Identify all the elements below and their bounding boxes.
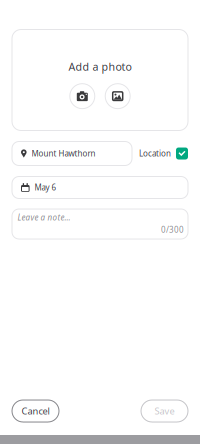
button[interactable]: Choose from library	[105, 84, 130, 109]
staticText: Add a photo	[68, 59, 131, 74]
staticText: 0/300	[161, 224, 184, 235]
button[interactable]: Save	[141, 400, 188, 422]
button[interactable]: Mount Hawthorn	[12, 141, 132, 165]
button[interactable]: Cancel	[12, 400, 59, 422]
staticText: Mount Hawthorn	[32, 148, 96, 159]
button[interactable]: May 6	[12, 176, 188, 198]
staticText: Save	[154, 405, 174, 417]
staticText: May 6	[35, 182, 57, 193]
staticText: Location	[139, 148, 171, 159]
button[interactable]: Take photo	[70, 84, 95, 109]
staticText: Leave a note...	[17, 212, 70, 223]
button[interactable]: Location	[139, 147, 188, 159]
button[interactable]: Leave a note...	[12, 209, 188, 239]
staticText: Cancel	[21, 405, 49, 417]
